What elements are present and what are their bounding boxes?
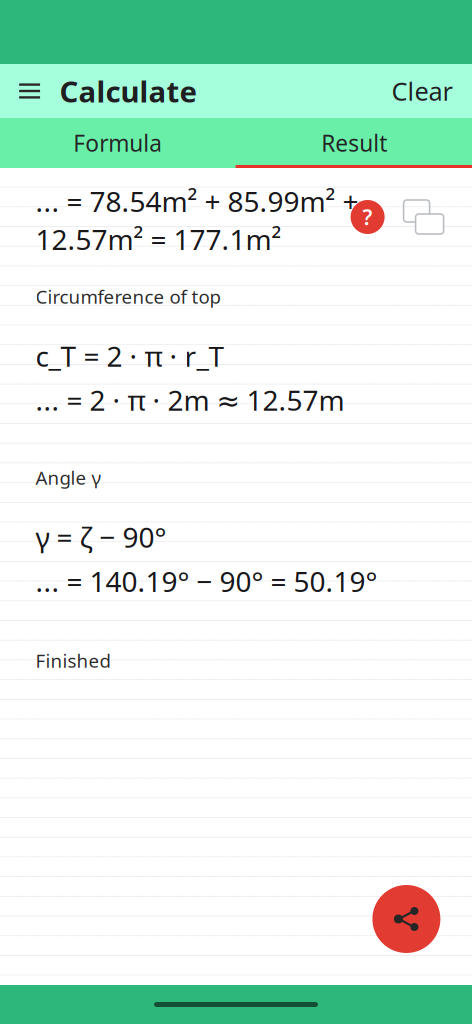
button[interactable]: Result xyxy=(236,118,472,168)
staticText: ... = 140.19° − 90° = 50.19° xyxy=(36,562,378,600)
button[interactable]: Copy xyxy=(404,200,448,238)
button[interactable]: Help xyxy=(351,200,385,234)
button[interactable]: Calculate xyxy=(52,64,198,118)
staticText: Calculate xyxy=(60,71,198,110)
staticText: Finished xyxy=(36,648,111,673)
staticText: ... = 78.54m² + 85.99m² + 12.57m² = 177.… xyxy=(36,182,359,258)
staticText: c_T = 2 · π · r_T xyxy=(36,337,225,375)
staticText: ... = 2 · π · 2m ≈ 12.57m xyxy=(36,381,345,419)
staticText: ? xyxy=(363,203,373,231)
staticText: Angle γ xyxy=(36,465,102,490)
button[interactable]: Formula xyxy=(0,118,236,168)
staticText: Result xyxy=(321,128,387,158)
staticText: Formula xyxy=(73,128,162,158)
button[interactable]: Share xyxy=(372,885,440,953)
staticText: Circumference of top xyxy=(36,284,221,309)
button[interactable]: Clear xyxy=(379,64,464,118)
staticText: Clear xyxy=(391,74,452,108)
button[interactable]: Menu xyxy=(8,64,52,118)
staticText: γ = ζ − 90° xyxy=(36,518,167,556)
